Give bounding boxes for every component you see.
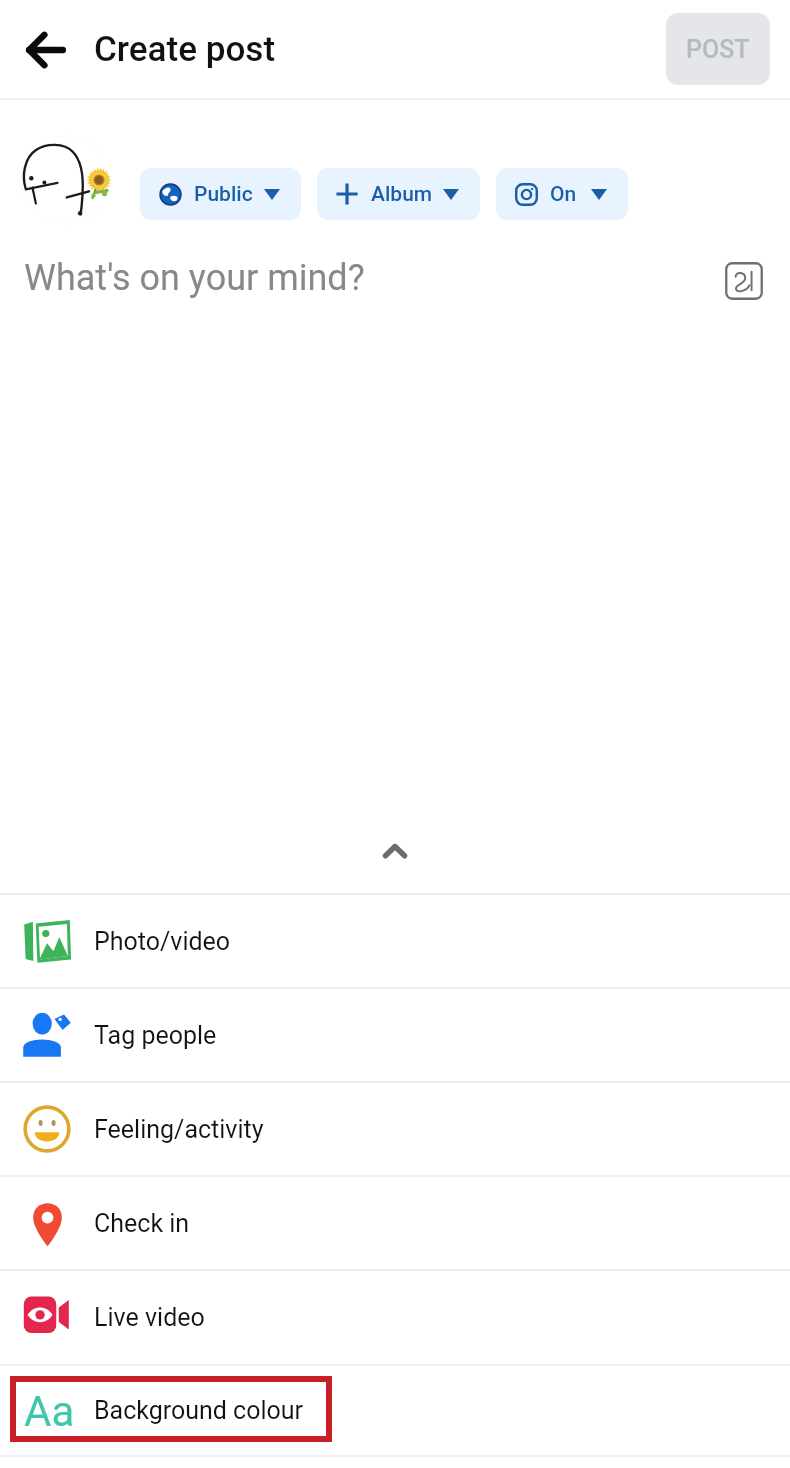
staticText: Live video: [94, 1303, 205, 1332]
staticText: Album: [371, 182, 433, 207]
staticText: Public: [194, 182, 253, 207]
staticText: Background colour: [94, 1396, 304, 1425]
staticText: Create post: [94, 29, 276, 70]
staticText: Feeling/activity: [94, 1115, 264, 1144]
button[interactable]: Album: [317, 168, 480, 220]
button[interactable]: Live video: [0, 1270, 790, 1364]
button[interactable]: Expand options: [355, 822, 435, 880]
staticText: Check in: [94, 1209, 190, 1238]
button[interactable]: Photo/video: [0, 894, 790, 988]
button[interactable]: Tag people: [0, 988, 790, 1082]
button[interactable]: Check in: [0, 1176, 790, 1270]
staticText: Aa: [24, 1387, 75, 1436]
staticText: On: [550, 182, 577, 207]
button[interactable]: POST: [666, 13, 770, 85]
staticText: POST: [686, 35, 750, 64]
button[interactable]: Back: [8, 12, 84, 88]
button[interactable]: Keyboard language: [721, 258, 767, 304]
button[interactable]: Aa: [0, 1365, 790, 1456]
staticText: What's on your mind?: [24, 257, 365, 299]
button[interactable]: Public: [140, 168, 301, 220]
staticText: Photo/video: [94, 927, 231, 956]
staticText: Tag people: [94, 1021, 217, 1050]
button[interactable]: Feeling/activity: [0, 1082, 790, 1176]
button[interactable]: On: [496, 168, 628, 220]
